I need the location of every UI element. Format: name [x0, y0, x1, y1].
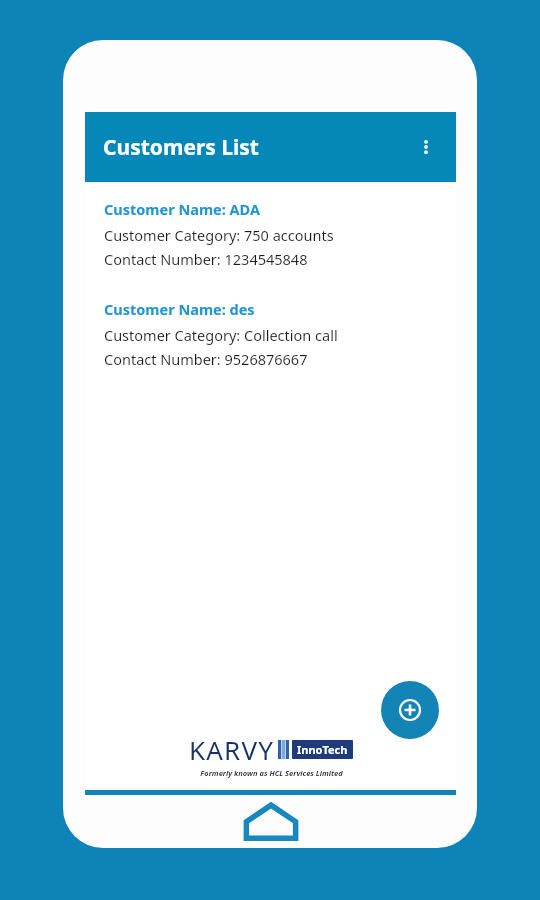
button[interactable]: Customer Name: des: [92, 290, 449, 380]
staticText: Customer Name: des: [104, 299, 255, 319]
staticText: Contact Number: 9526876667: [104, 349, 308, 369]
button[interactable]: More options: [406, 127, 446, 167]
staticText: InnoTech: [297, 742, 348, 757]
button[interactable]: Add customer: [381, 681, 439, 739]
staticText: Contact Number: 1234545848: [104, 249, 308, 269]
staticText: Formerly known as HCL Services Limited: [200, 768, 343, 778]
button[interactable]: Home: [243, 803, 299, 839]
staticText: KARVY: [189, 732, 275, 767]
staticText: Customer Category: Collection call: [104, 325, 338, 345]
staticText: Customers List: [103, 133, 259, 162]
staticText: Customer Name: ADA: [104, 199, 260, 219]
button[interactable]: Customer Name: ADA: [92, 190, 449, 280]
staticText: Customer Category: 750 accounts: [104, 225, 334, 245]
